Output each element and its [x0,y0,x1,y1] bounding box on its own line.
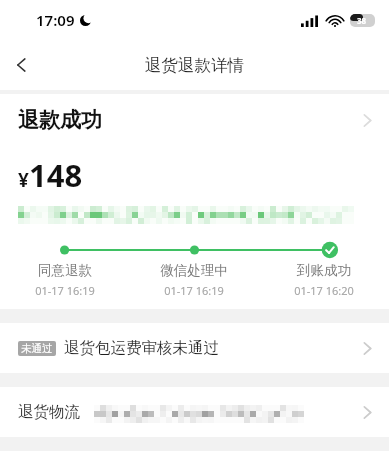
staticText: 01-17 16:19 [35,283,95,298]
staticText: 同意退款 [38,262,92,279]
staticText: 退货退款详情 [145,55,244,76]
staticText: 到账成功 [297,262,351,279]
staticText: 01-17 16:20 [294,283,354,298]
button[interactable]: 退款成功 [0,94,389,146]
staticText: ¥ [18,167,29,193]
button[interactable]: 退货物流 [0,387,389,437]
button[interactable]: Back [0,43,44,87]
staticText: 01-17 16:19 [164,283,224,298]
button[interactable]: 未通过 [0,323,389,373]
staticText: 退货包运费审核未通过 [64,338,219,358]
staticText: 17:09 [36,10,75,30]
staticText: 未通过 [21,342,53,355]
staticText: 38 [357,15,367,26]
staticText: 退货物流 [18,402,80,422]
staticText: 退款成功 [18,107,102,133]
staticText: 微信处理中 [160,262,228,279]
staticText: 148 [29,154,83,196]
